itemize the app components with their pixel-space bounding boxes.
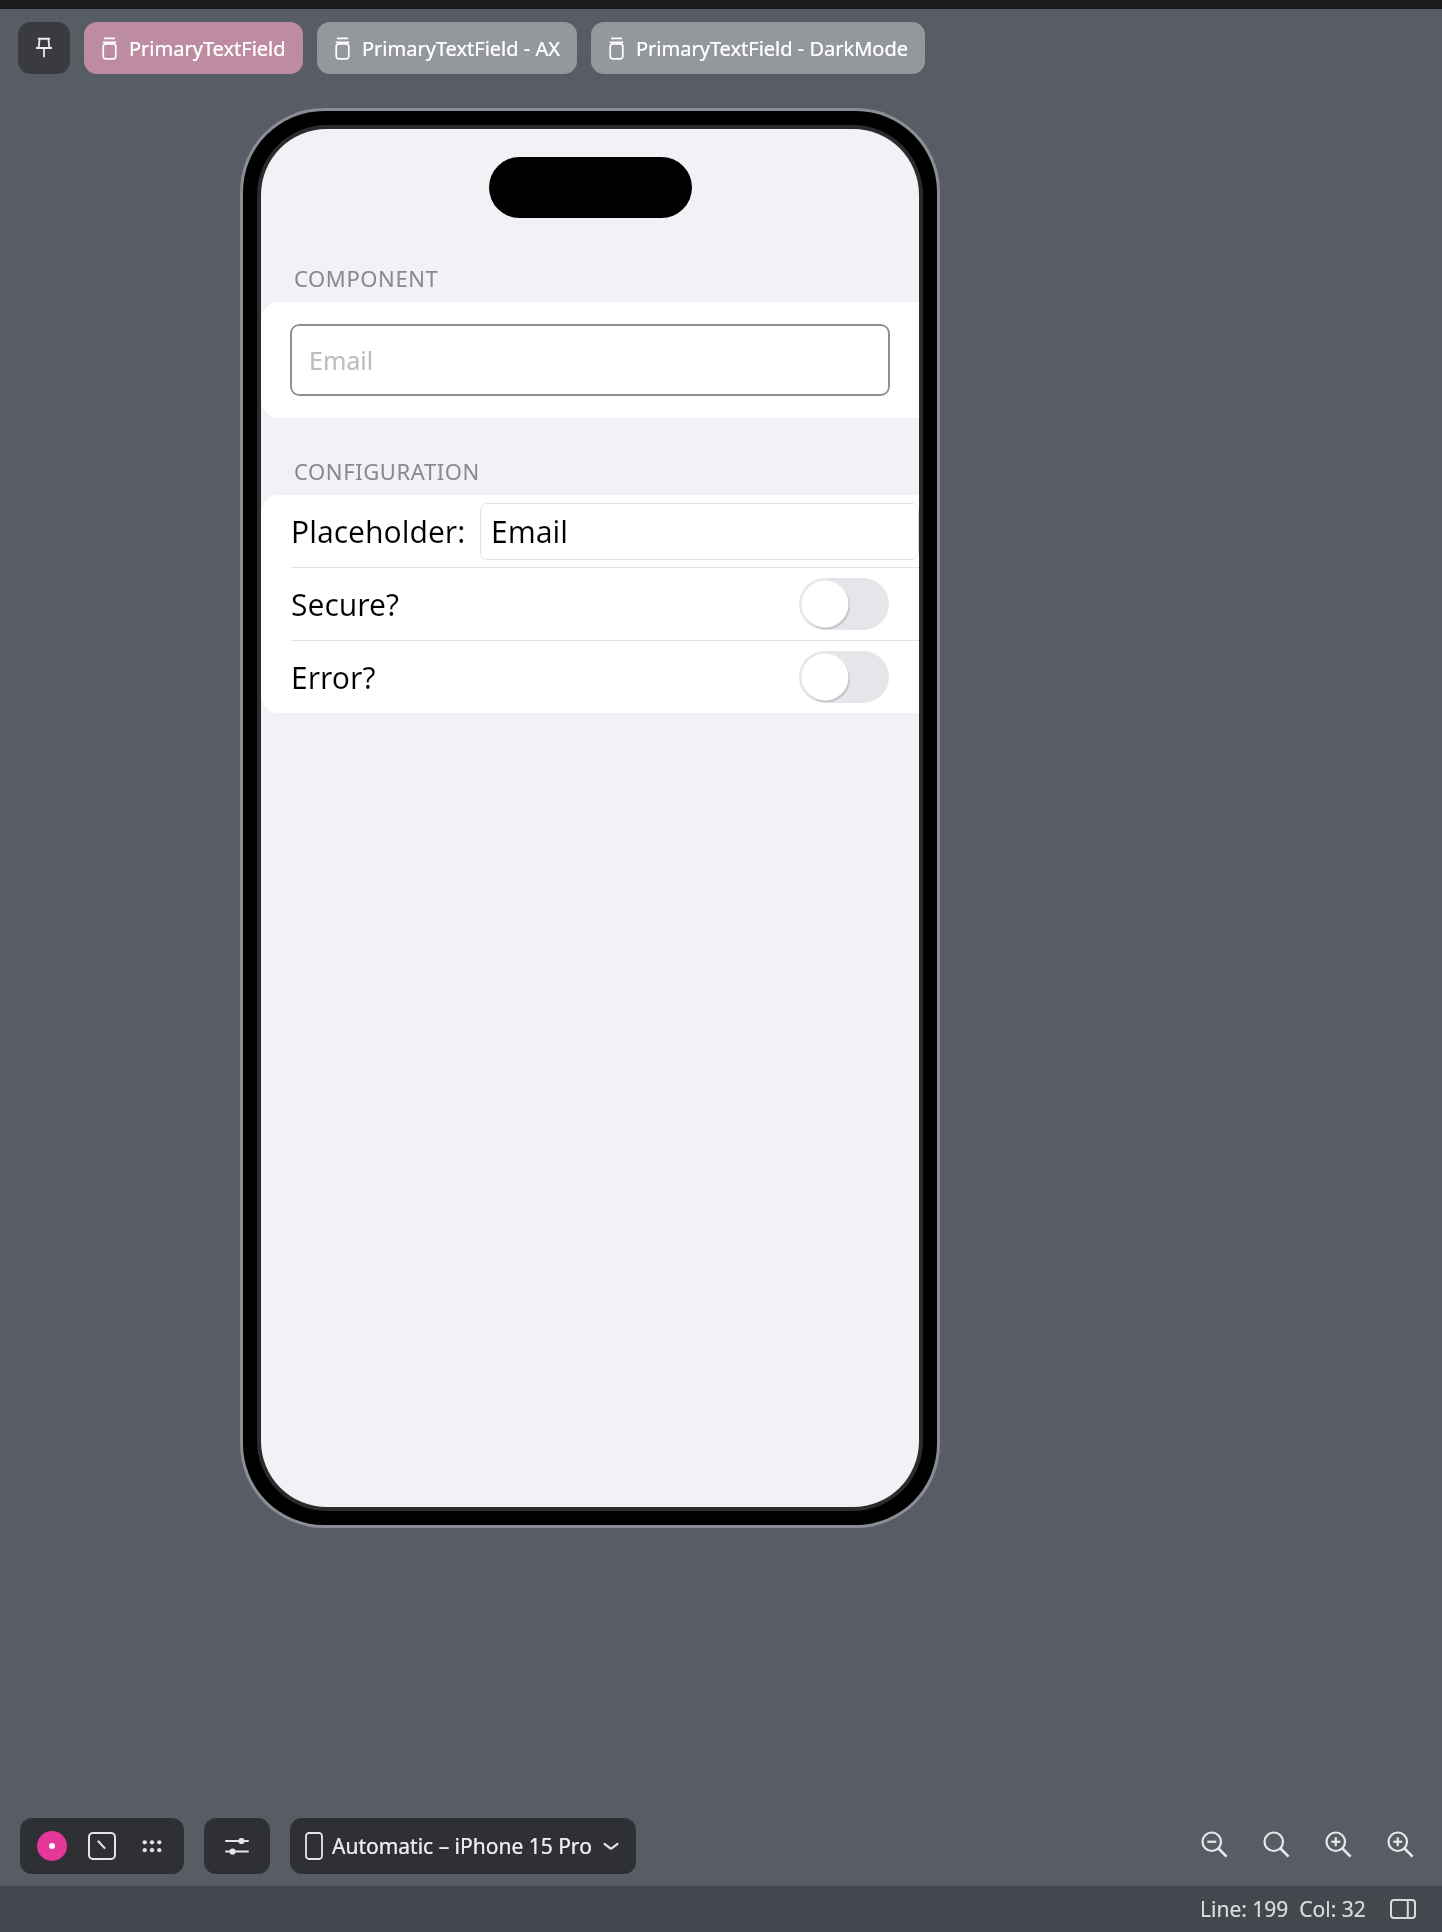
button[interactable]: Device settings	[204, 1818, 270, 1874]
staticText: Email	[491, 511, 569, 552]
button[interactable]: Zoom in1	[1318, 1824, 1358, 1864]
button[interactable]: PrimaryTextField - DarkMode	[591, 22, 925, 74]
button[interactable]: Zoom out	[1194, 1824, 1234, 1864]
button[interactable]: Toggle panel	[1388, 1894, 1418, 1924]
staticText: Line: 199 Col: 32	[1200, 1895, 1366, 1924]
button[interactable]: Zoom fit	[1256, 1824, 1296, 1864]
button[interactable]: Automatic – iPhone 15 Pro	[290, 1818, 636, 1874]
staticText: Error?	[291, 657, 376, 698]
button[interactable]: Toggle off	[799, 578, 889, 630]
button[interactable]: Play preview	[34, 1828, 70, 1864]
staticText: Automatic – iPhone 15 Pro	[332, 1832, 592, 1861]
button[interactable]: Email	[290, 324, 890, 396]
button[interactable]: Variants grid	[134, 1828, 170, 1864]
button[interactable]: Placeholder:	[261, 495, 919, 567]
button[interactable]: Error?	[261, 641, 919, 713]
button[interactable]: Select element	[84, 1828, 120, 1864]
button[interactable]: PrimaryTextField - AX	[317, 22, 577, 74]
button[interactable]: Toggle off	[799, 651, 889, 703]
staticText: PrimaryTextField - DarkMode	[636, 35, 908, 62]
staticText: CONFIGURATION	[294, 456, 480, 486]
staticText: Placeholder:	[291, 511, 466, 552]
button[interactable]: Pin preview	[18, 22, 70, 74]
staticText: Secure?	[291, 584, 400, 625]
staticText: PrimaryTextField - AX	[362, 35, 560, 62]
staticText: Email	[309, 343, 374, 377]
button[interactable]: Zoom in2	[1380, 1824, 1420, 1864]
staticText: COMPONENT	[294, 263, 439, 293]
button[interactable]: Secure?	[261, 568, 919, 640]
staticText: PrimaryTextField	[129, 35, 286, 62]
button[interactable]: PrimaryTextField	[84, 22, 303, 74]
